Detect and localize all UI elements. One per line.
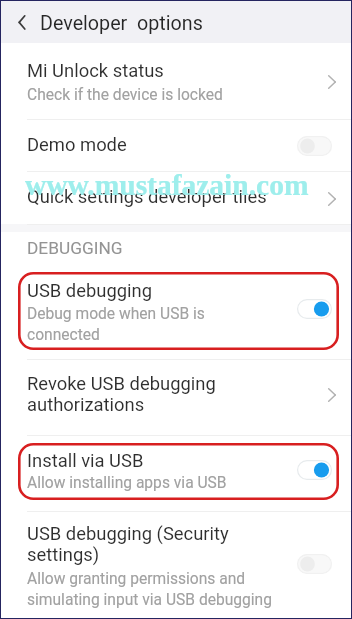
staticText: Allow installing apps via USB	[27, 474, 227, 492]
button[interactable]	[1, 44, 351, 120]
button[interactable]	[1, 436, 351, 511]
staticText: Check if the device is locked	[27, 86, 223, 104]
button[interactable]	[1, 263, 351, 359]
button[interactable]	[1, 360, 351, 435]
staticText: Mi Unlock status	[27, 60, 164, 82]
button[interactable]	[1, 172, 351, 224]
staticText: Debug mode when USB is connected	[27, 305, 205, 344]
staticText: USB debugging	[27, 280, 153, 302]
staticText: Install via USB	[27, 450, 144, 472]
staticText: Revoke USB debugging authorizations	[27, 373, 216, 415]
button[interactable]: Switch on	[297, 460, 332, 480]
staticText: Allow granting permissions and simulatin…	[27, 570, 272, 609]
staticText: DEBUGGING	[27, 238, 123, 258]
button[interactable]: Switch off	[297, 554, 332, 574]
button[interactable]: Open	[317, 184, 347, 214]
staticText: Developer options	[40, 12, 203, 35]
button[interactable]: Open	[317, 380, 347, 410]
staticText: www.mustafazain.com	[25, 169, 309, 202]
staticText: Quick settings developer tiles	[27, 186, 267, 208]
button[interactable]: Back	[7, 7, 37, 37]
button[interactable]: Open	[317, 67, 347, 97]
button[interactable]: Switch on	[297, 299, 332, 319]
button[interactable]	[1, 120, 351, 171]
button[interactable]	[1, 512, 351, 619]
staticText: Demo mode	[27, 134, 127, 156]
staticText: USB debugging (Security settings)	[27, 523, 229, 565]
button[interactable]: Switch off	[297, 136, 332, 156]
